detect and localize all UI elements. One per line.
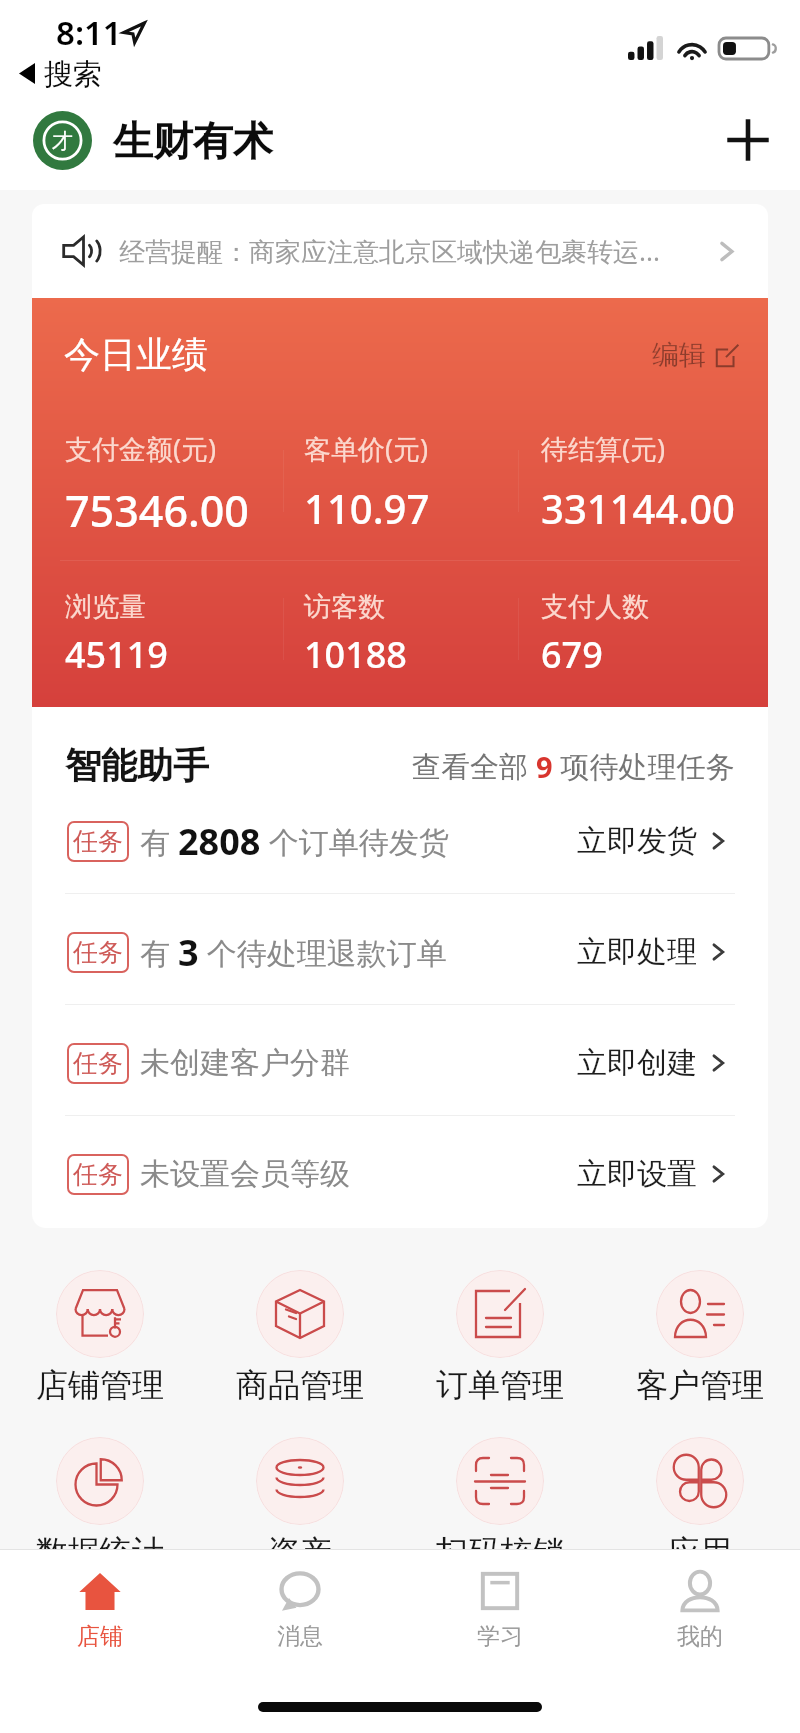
- staticText: 学习: [477, 1622, 523, 1651]
- button[interactable]: 我的: [600, 1550, 800, 1670]
- staticText: 支付金额(元): [65, 430, 217, 467]
- button[interactable]: 编辑: [652, 338, 740, 372]
- staticText: 数据统计: [36, 1532, 164, 1572]
- staticText: 75346.00: [65, 481, 249, 540]
- button[interactable]: Add: [720, 112, 776, 168]
- staticText: 3: [178, 928, 199, 977]
- staticText: 任务: [73, 826, 123, 857]
- staticText: 订单管理: [436, 1365, 564, 1405]
- staticText: 个订单待发货: [261, 821, 449, 862]
- button[interactable]: 扫码核销: [400, 1437, 600, 1572]
- staticText: 未创建客户分群: [140, 1044, 350, 1082]
- button[interactable]: 客户管理: [600, 1270, 800, 1405]
- button[interactable]: 任务: [67, 917, 730, 987]
- button[interactable]: 店铺: [0, 1550, 200, 1670]
- staticText: 今日业绩: [64, 332, 208, 377]
- staticText: 才: [52, 128, 73, 154]
- staticText: 扫码核销: [436, 1532, 564, 1572]
- button[interactable]: 任务: [67, 806, 730, 876]
- staticText: 商品管理: [236, 1365, 364, 1405]
- staticText: 智能助手: [65, 743, 209, 788]
- staticText: 任务: [73, 1048, 123, 1079]
- staticText: 110.97: [304, 481, 430, 535]
- staticText: 9: [536, 747, 553, 786]
- staticText: 679: [541, 630, 603, 679]
- button[interactable]: 应用: [600, 1437, 800, 1572]
- staticText: 8:11: [56, 10, 122, 55]
- staticText: 店铺: [77, 1622, 123, 1651]
- staticText: 项待处理任务: [553, 746, 735, 786]
- staticText: 2808: [178, 817, 261, 866]
- staticText: 任务: [73, 1159, 123, 1190]
- staticText: 未设置会员等级: [140, 1155, 350, 1193]
- staticText: 45119: [65, 630, 168, 679]
- staticText: 任务: [73, 937, 123, 968]
- staticText: 立即设置: [577, 1155, 697, 1193]
- staticText: 支付人数: [541, 590, 649, 624]
- button[interactable]: 订单管理: [400, 1270, 600, 1405]
- staticText: 有: [140, 821, 178, 862]
- staticText: 立即创建: [577, 1044, 697, 1082]
- button[interactable]: 任务: [67, 1139, 730, 1209]
- button[interactable]: 商品管理: [200, 1270, 400, 1405]
- staticText: 待结算(元): [541, 430, 666, 467]
- button[interactable]: 任务: [67, 1028, 730, 1098]
- button[interactable]: 消息: [200, 1550, 400, 1670]
- staticText: 查看全部: [412, 746, 536, 786]
- button[interactable]: 学习: [400, 1550, 600, 1670]
- staticText: 资产: [268, 1532, 332, 1572]
- staticText: 浏览量: [65, 590, 146, 624]
- staticText: 经营提醒：商家应注意北京区域快递包裹转运...: [119, 233, 701, 269]
- staticText: 消息: [277, 1622, 323, 1651]
- button[interactable]: 数据统计: [0, 1437, 200, 1572]
- staticText: 立即处理: [577, 933, 697, 971]
- staticText: 个待处理退款订单: [199, 932, 447, 973]
- staticText: 331144.00: [541, 481, 735, 535]
- staticText: 编辑: [652, 338, 706, 372]
- staticText: 店铺管理: [36, 1365, 164, 1405]
- button[interactable]: 资产: [200, 1437, 400, 1572]
- staticText: 生财有术: [113, 116, 273, 166]
- staticText: 10188: [304, 630, 407, 679]
- staticText: 有: [140, 932, 178, 973]
- staticText: 应用: [668, 1532, 732, 1572]
- staticText: 访客数: [304, 590, 385, 624]
- staticText: 立即发货: [577, 822, 697, 860]
- staticText: 客户管理: [636, 1365, 764, 1405]
- button[interactable]: 店铺管理: [0, 1270, 200, 1405]
- staticText: 我的: [677, 1622, 723, 1651]
- button[interactable]: 经营提醒：商家应注意北京区域快递包裹转运...: [32, 204, 768, 298]
- staticText: 客单价(元): [304, 430, 429, 467]
- staticText: 搜索: [44, 56, 102, 93]
- button[interactable]: 查看全部: [412, 746, 735, 786]
